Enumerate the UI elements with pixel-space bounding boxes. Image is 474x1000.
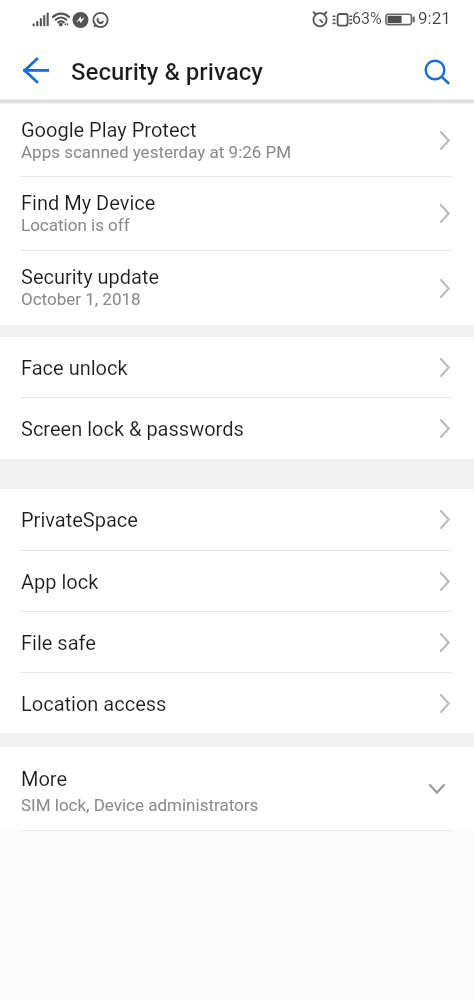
staticText: 9:21	[418, 8, 451, 28]
button[interactable]: Screen lock & passwords	[0, 398, 474, 459]
staticText: PrivateSpace	[21, 508, 138, 531]
button[interactable]: Face unlock	[0, 337, 474, 397]
button[interactable]: Google Play Protect	[0, 104, 474, 176]
button[interactable]: File safe	[0, 612, 474, 672]
staticText: Apps scanned yesterday at 9:26 PM	[21, 142, 292, 162]
staticText: Security update	[21, 265, 160, 288]
staticText: Find My Device	[21, 191, 156, 214]
staticText: Security & privacy	[71, 58, 263, 86]
staticText: App lock	[21, 570, 99, 593]
staticText: Google Play Protect	[21, 118, 197, 141]
staticText: Location is off	[21, 215, 130, 235]
staticText: More	[21, 767, 68, 790]
staticText: Screen lock & passwords	[21, 417, 244, 440]
staticText: SIM lock, Device administrators	[21, 795, 259, 815]
button[interactable]	[23, 57, 49, 83]
staticText: Face unlock	[21, 356, 128, 379]
button[interactable]: Security update	[0, 251, 474, 325]
button[interactable]: PrivateSpace	[0, 489, 474, 550]
button[interactable]: App lock	[0, 551, 474, 611]
button[interactable]: Find My Device	[0, 177, 474, 250]
staticText: 63%	[352, 9, 382, 28]
staticText: October 1, 2018	[21, 289, 141, 309]
button[interactable]: Location access	[0, 673, 474, 733]
staticText: File safe	[21, 631, 96, 654]
staticText: Location access	[21, 692, 167, 715]
button[interactable]	[422, 55, 452, 85]
button[interactable]: More	[0, 747, 474, 830]
